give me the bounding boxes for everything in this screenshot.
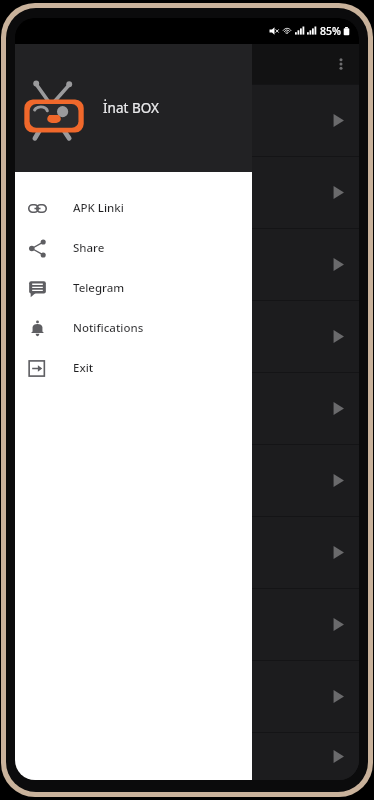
button[interactable] [15,156,359,228]
button[interactable]: Exit [15,348,252,388]
button[interactable]: APK Linki [15,188,252,228]
button[interactable] [15,660,359,732]
staticText: Share [73,240,105,256]
button[interactable]: Telegram [15,268,252,308]
button[interactable] [15,444,359,516]
button[interactable] [15,300,359,372]
button[interactable] [15,732,359,780]
button[interactable] [15,84,359,156]
button[interactable]: More options [323,46,359,82]
staticText: Exit [73,360,94,376]
staticText: 85% [320,24,341,38]
button[interactable]: Notifications [15,308,252,348]
button[interactable] [15,588,359,660]
button[interactable]: Share [15,228,252,268]
button[interactable] [15,228,359,300]
staticText: Telegram [73,280,125,296]
button[interactable] [15,372,359,444]
staticText: Notifications [73,320,144,336]
button[interactable]: İnat BOX [15,44,252,172]
staticText: APK Linki [73,200,124,216]
staticText: İnat BOX [103,99,159,117]
button[interactable] [15,516,359,588]
